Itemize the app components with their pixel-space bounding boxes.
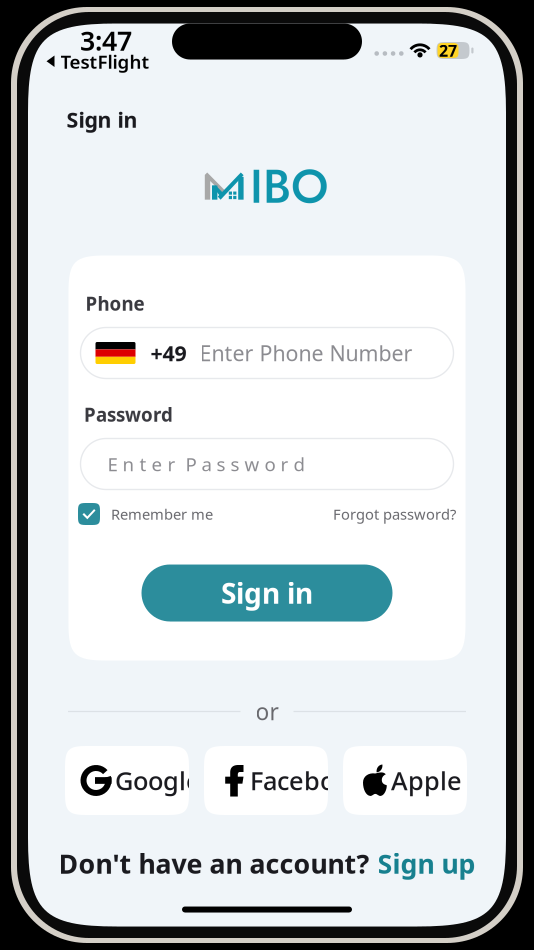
button[interactable]: Google (65, 746, 189, 815)
button[interactable]: Forgot password? (333, 504, 456, 524)
staticText: 27 (439, 40, 457, 61)
button[interactable]: Remember me (78, 503, 213, 525)
staticText: IBO (250, 153, 328, 220)
staticText: Google (115, 764, 201, 797)
button[interactable]: Sign in (141, 564, 392, 621)
staticText: Facebook (250, 764, 364, 797)
button[interactable]: Apple (343, 746, 467, 815)
staticText: Password (84, 402, 173, 427)
staticText: or (255, 696, 278, 726)
staticText: +49 (150, 339, 186, 367)
staticText: Remember me (111, 504, 213, 524)
staticText: Sign in (221, 574, 313, 612)
staticText: Don't have an account? (58, 846, 369, 881)
staticText: 3:47 (80, 23, 132, 58)
button[interactable]: Facebook (204, 746, 328, 815)
staticText: Phone (85, 291, 144, 316)
staticText: Apple (391, 764, 462, 797)
staticText: Enter Phone Number (199, 339, 412, 367)
staticText: E n t e r P a s s w o r d (107, 452, 304, 476)
staticText: TestFlight (60, 49, 149, 74)
staticText: Forgot password? (333, 504, 456, 524)
staticText: Sign in (66, 105, 137, 134)
staticText: Sign up (377, 846, 475, 881)
button[interactable]: Don't have an account? (58, 846, 475, 881)
